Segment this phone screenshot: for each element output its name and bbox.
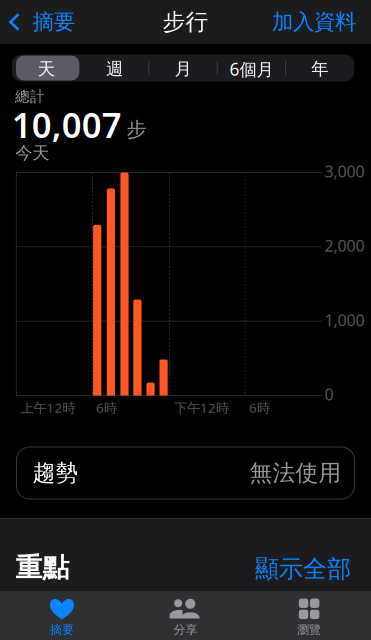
button[interactable]: 6個月: [217, 54, 286, 81]
staticText: 6時: [96, 399, 117, 416]
staticText: 摘要: [50, 622, 74, 637]
staticText: 上午12時: [20, 399, 75, 416]
staticText: 下午12時: [174, 399, 229, 416]
staticText: 今天: [15, 142, 49, 164]
staticText: 6時: [249, 399, 270, 416]
staticText: 1,000: [324, 309, 364, 331]
button[interactable]: 月: [149, 54, 217, 81]
staticText: 天: [38, 58, 55, 80]
button[interactable]: 加入資料: [272, 0, 371, 44]
staticText: 2,000: [324, 235, 364, 256]
staticText: 瀏覽: [297, 622, 321, 637]
staticText: 步: [126, 117, 146, 142]
staticText: 月: [174, 58, 191, 80]
staticText: 摘要: [33, 9, 75, 35]
staticText: 無法使用: [249, 459, 341, 487]
staticText: 顯示全部: [255, 554, 351, 584]
staticText: 0: [324, 384, 333, 405]
button[interactable]: 天: [12, 54, 80, 81]
button[interactable]: 年: [286, 54, 354, 81]
staticText: 加入資料: [272, 9, 356, 35]
staticText: 6個月: [229, 57, 273, 80]
button[interactable]: 摘要: [0, 0, 81, 44]
staticText: 週: [106, 58, 123, 80]
staticText: 總計: [15, 87, 45, 105]
staticText: 3,000: [324, 161, 364, 182]
button[interactable]: 顯示全部: [255, 554, 371, 584]
button[interactable]: 週: [80, 54, 149, 81]
staticText: 分享: [173, 622, 197, 637]
staticText: 10,007: [12, 101, 122, 147]
staticText: 年: [311, 58, 328, 80]
button[interactable]: 趨勢: [16, 447, 354, 499]
staticText: 趨勢: [32, 459, 78, 487]
button[interactable]: 摘要: [0, 592, 124, 640]
button[interactable]: 瀏覽: [247, 592, 371, 640]
button[interactable]: 分享: [124, 592, 247, 640]
staticText: 步行: [162, 8, 208, 36]
staticText: 重點: [15, 551, 69, 584]
